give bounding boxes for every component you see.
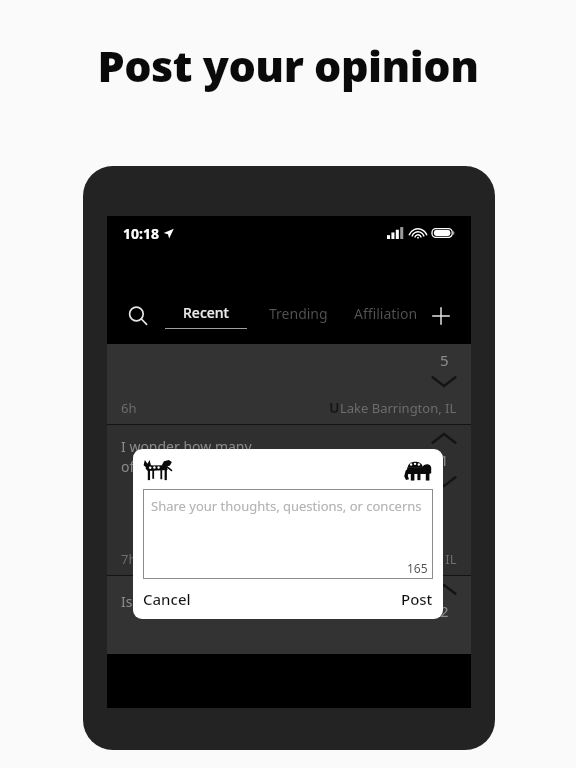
button[interactable]: Post — [401, 589, 433, 609]
staticText: Cancel — [143, 589, 191, 609]
staticText: Recent — [183, 303, 229, 322]
button[interactable]: Affiliation — [350, 307, 422, 326]
button[interactable]: Trending — [265, 307, 332, 326]
staticText: 7h — [121, 550, 137, 568]
staticText: Is 2020 over yet? — [121, 592, 231, 611]
staticText: 6h — [121, 399, 137, 417]
staticText: Post your opinion — [0, 36, 576, 95]
staticText: 1 — [440, 450, 449, 470]
button[interactable]: I wonder how many of us feel that way — [107, 425, 471, 575]
button[interactable]: Share your thoughts, questions, or conce… — [143, 489, 433, 579]
staticText: 165 — [407, 560, 428, 576]
staticText: 5 — [440, 350, 449, 370]
button[interactable]: Republican — [399, 458, 433, 482]
button[interactable]: New post — [425, 300, 457, 332]
button[interactable]: Recent — [165, 303, 247, 329]
staticText: Post — [401, 589, 433, 609]
button[interactable]: Democrat — [143, 458, 177, 482]
staticText: 10:18 — [123, 224, 159, 243]
staticText: Lake Barrington, IL — [340, 399, 457, 417]
staticText: I wonder how many of us feel that way — [121, 437, 252, 476]
staticText: Share your thoughts, questions, or conce… — [151, 497, 422, 515]
button[interactable]: Search — [121, 299, 155, 333]
button[interactable]: Is 2020 over yet? — [107, 576, 471, 654]
button[interactable]: Cancel — [143, 589, 191, 609]
staticText: Barrington, IL — [372, 550, 457, 568]
button[interactable]: 5 — [107, 344, 471, 424]
staticText: U — [329, 398, 340, 417]
staticText: 2 — [440, 601, 449, 621]
